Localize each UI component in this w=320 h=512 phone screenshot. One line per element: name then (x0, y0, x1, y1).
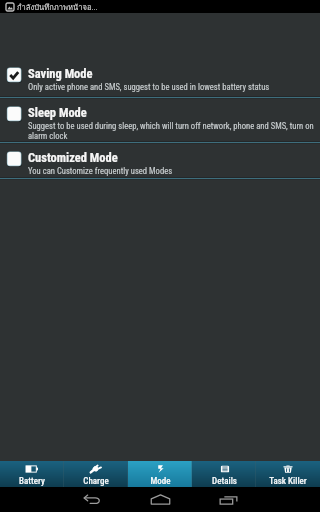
button[interactable]: Customized Mode (0, 144, 320, 177)
button[interactable]: Saving Mode (0, 60, 320, 96)
button[interactable]: Task Killer (256, 461, 320, 487)
staticText: Only active phone and SMS, suggest to be… (28, 82, 270, 92)
staticText: Details (212, 476, 237, 487)
button[interactable]: Home (134, 487, 187, 512)
button[interactable]: Battery (0, 461, 64, 487)
staticText: Saving Mode (28, 66, 93, 81)
staticText: Battery (19, 476, 45, 487)
staticText: Sleep Mode (28, 105, 87, 120)
staticText: กำลังบันทึกภาพหน้าจอ... (17, 1, 98, 13)
button[interactable]: Charge (64, 461, 128, 487)
staticText: Customized Mode (28, 150, 118, 165)
staticText: Task Killer (269, 476, 307, 487)
button[interactable]: Details (192, 461, 256, 487)
button[interactable]: Sleep Mode (0, 99, 320, 141)
staticText: Charge (83, 476, 109, 487)
staticText: Mode (150, 476, 171, 487)
staticText: Suggest to be used during sleep, which w… (28, 121, 315, 141)
button[interactable]: Back (67, 487, 117, 512)
button[interactable]: Recent apps (203, 487, 254, 512)
staticText: You can Customize frequently used Modes (28, 166, 173, 176)
button[interactable]: Mode (128, 461, 192, 487)
